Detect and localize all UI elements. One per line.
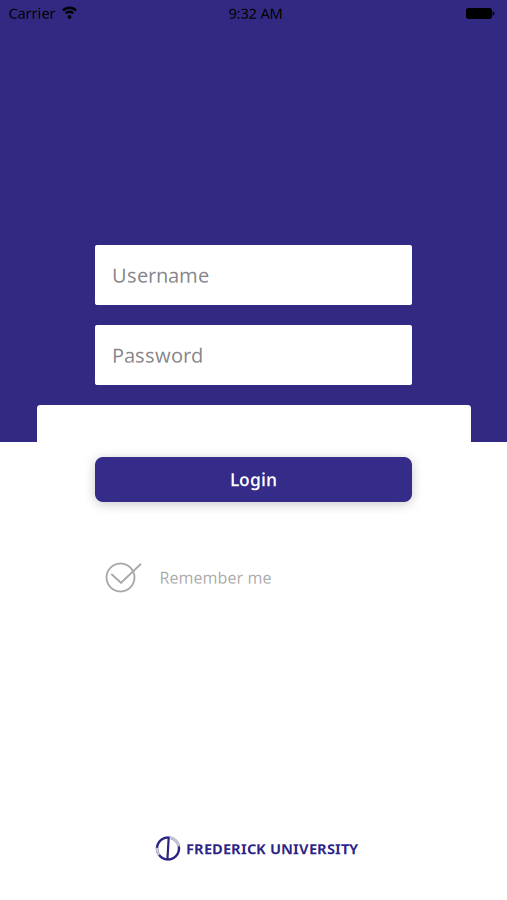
staticText: Username bbox=[112, 262, 209, 288]
button[interactable]: Remember me bbox=[106, 558, 271, 596]
staticText: Remember me bbox=[159, 567, 271, 588]
staticText: 9:32 AM bbox=[228, 3, 282, 23]
button[interactable]: Login bbox=[95, 457, 412, 502]
staticText: Password bbox=[112, 342, 203, 368]
staticText: Login bbox=[230, 468, 277, 491]
button[interactable]: Password bbox=[95, 325, 412, 385]
button[interactable]: Username bbox=[95, 245, 412, 305]
staticText: FREDERICK UNIVERSITY bbox=[186, 839, 358, 858]
staticText: Carrier bbox=[8, 3, 55, 23]
